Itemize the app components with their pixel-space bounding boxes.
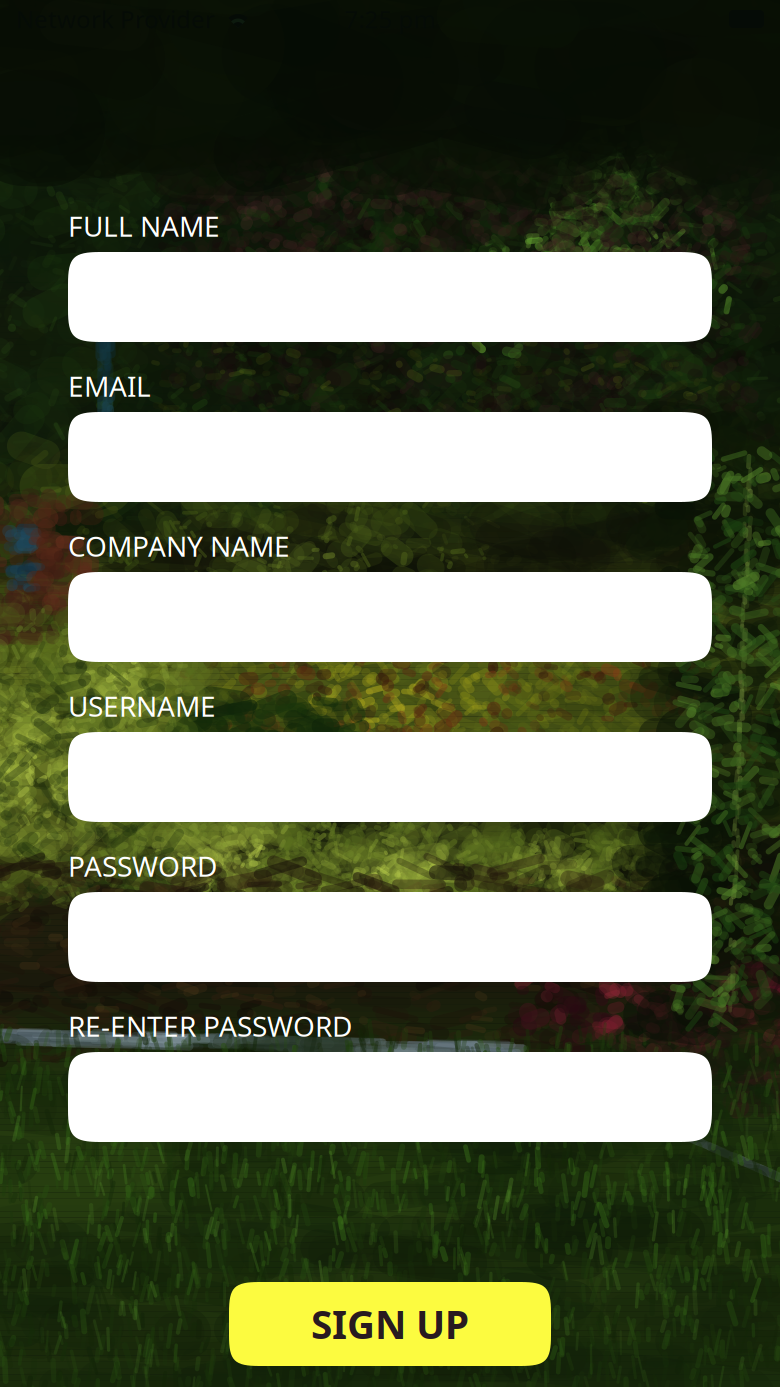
staticText: FULL NAME: [68, 207, 220, 245]
button[interactable]: [68, 1052, 712, 1142]
button[interactable]: [68, 732, 712, 822]
staticText: USERNAME: [68, 687, 216, 725]
button[interactable]: [68, 412, 712, 502]
staticText: EMAIL: [68, 367, 151, 405]
button[interactable]: [68, 572, 712, 662]
staticText: COMPANY NAME: [68, 527, 290, 565]
staticText: RE-ENTER PASSWORD: [68, 1007, 352, 1045]
staticText: SIGN UP: [311, 1298, 469, 1350]
button[interactable]: [68, 892, 712, 982]
staticText: PASSWORD: [68, 847, 217, 885]
button[interactable]: SIGN UP: [229, 1282, 551, 1366]
button[interactable]: [68, 252, 712, 342]
